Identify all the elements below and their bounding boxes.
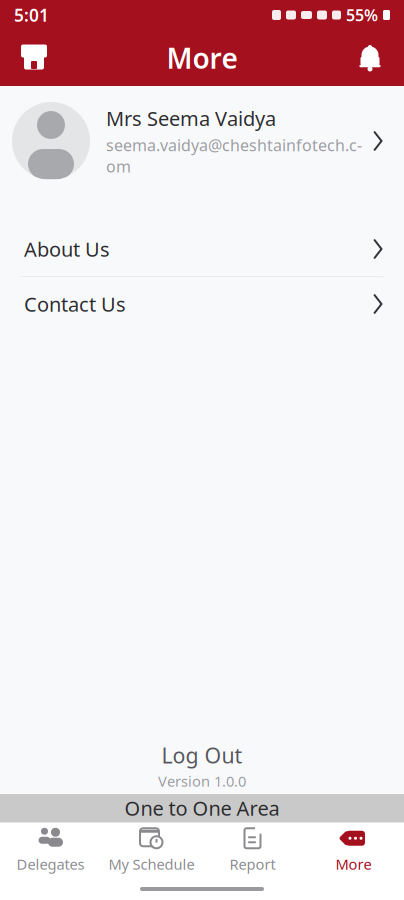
button[interactable]: About Us bbox=[0, 222, 404, 276]
button[interactable]: Delegates bbox=[0, 822, 101, 878]
staticText: About Us bbox=[24, 236, 110, 262]
staticText: seema.vaidya@cheshtainfotech.com bbox=[106, 134, 362, 177]
staticText: Report bbox=[229, 854, 275, 874]
staticText: More bbox=[166, 39, 237, 77]
button[interactable]: Home bbox=[6, 32, 62, 84]
staticText: Version 1.0.0 bbox=[158, 771, 246, 791]
button[interactable]: My Schedule bbox=[101, 822, 202, 878]
staticText: My Schedule bbox=[108, 854, 194, 874]
staticText: Delegates bbox=[16, 854, 84, 874]
button[interactable]: Notifications bbox=[342, 32, 398, 84]
staticText: Contact Us bbox=[24, 291, 126, 317]
staticText: One to One Area bbox=[124, 795, 279, 821]
staticText: Log Out bbox=[161, 741, 242, 769]
staticText: 5:01 bbox=[14, 3, 49, 26]
button[interactable]: Log Out bbox=[0, 738, 404, 794]
button[interactable]: Contact Us bbox=[0, 277, 404, 331]
staticText: Mrs Seema Vaidya bbox=[106, 105, 276, 132]
staticText: More bbox=[335, 854, 371, 874]
button[interactable]: More bbox=[303, 822, 404, 878]
staticText: 55% bbox=[346, 4, 378, 26]
button[interactable]: Mrs Seema Vaidya bbox=[0, 86, 404, 196]
button[interactable]: Report bbox=[202, 822, 303, 878]
